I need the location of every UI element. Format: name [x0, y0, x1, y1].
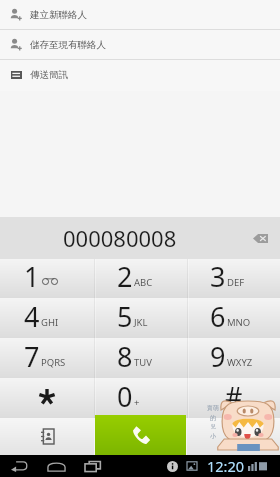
staticText: 0: [117, 378, 133, 415]
staticText: 7: [24, 338, 40, 375]
staticText: 12:20: [207, 456, 245, 476]
button[interactable]: Back: [4, 455, 34, 477]
staticText: 2: [117, 258, 133, 295]
button[interactable]: Contacts: [0, 418, 94, 455]
staticText: 兒: [211, 423, 216, 429]
staticText: 的: [210, 414, 216, 422]
staticText: TUV: [134, 356, 152, 369]
button[interactable]: 3: [187, 259, 280, 298]
button[interactable]: 9: [187, 338, 280, 378]
button[interactable]: Recent apps: [78, 455, 108, 477]
staticText: 3: [210, 258, 226, 295]
staticText: 傳送簡訊: [30, 69, 68, 81]
button[interactable]: 傳送簡訊: [0, 60, 280, 89]
staticText: 8: [117, 338, 133, 375]
button[interactable]: 7: [0, 338, 94, 378]
button[interactable]: 000080008: [0, 217, 240, 259]
button[interactable]: #: [187, 378, 280, 418]
button[interactable]: More options: [187, 418, 280, 455]
button[interactable]: 5: [94, 298, 187, 338]
staticText: MNO: [227, 316, 251, 329]
button[interactable]: Call: [95, 415, 186, 455]
button[interactable]: 8: [94, 338, 187, 378]
staticText: PQRS: [41, 356, 66, 369]
button[interactable]: 6: [187, 298, 280, 338]
staticText: 儲存至現有聯絡人: [30, 39, 106, 51]
staticText: 1: [24, 258, 40, 295]
staticText: 建立新聯絡人: [30, 9, 87, 21]
staticText: DEF: [227, 276, 245, 289]
staticText: 小: [210, 432, 216, 440]
button[interactable]: 儲存至現有聯絡人: [0, 30, 280, 59]
staticText: 5: [117, 298, 133, 335]
staticText: 9: [210, 338, 226, 375]
staticText: WXYZ: [227, 356, 253, 369]
staticText: GHI: [41, 316, 59, 329]
button[interactable]: [0, 378, 94, 418]
staticText: JKL: [134, 316, 148, 329]
staticText: 4: [24, 298, 40, 335]
button[interactable]: 0: [94, 378, 187, 418]
button[interactable]: 4: [0, 298, 94, 338]
button[interactable]: 1: [0, 259, 94, 298]
staticText: 賣萌: [207, 404, 219, 412]
button[interactable]: Backspace: [240, 217, 280, 259]
staticText: 6: [210, 298, 226, 335]
staticText: #: [225, 378, 243, 415]
button[interactable]: 建立新聯絡人: [0, 0, 280, 29]
button[interactable]: Home: [41, 455, 71, 477]
staticText: 000080008: [63, 223, 177, 253]
staticText: ABC: [134, 276, 153, 289]
staticText: +: [134, 396, 140, 409]
button[interactable]: 2: [94, 259, 187, 298]
